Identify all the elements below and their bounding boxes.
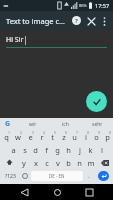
button[interactable]: DE - EN [31,171,83,181]
staticText: n [77,158,82,168]
button[interactable]: Emoji [19,171,31,181]
button[interactable]: ?123 [1,171,19,181]
button[interactable]: j [74,143,85,156]
button[interactable]: n [74,156,85,169]
button[interactable]: Enter [98,171,109,181]
staticText: e [28,132,33,142]
staticText: c [45,158,49,168]
staticText: 17:57 [95,2,110,9]
button[interactable]: ich [49,118,81,130]
button[interactable]: l [96,143,107,156]
button[interactable]: Close [84,14,98,28]
button[interactable]: Recent apps [81,184,97,200]
button[interactable]: z [58,130,69,143]
staticText: d [33,145,38,155]
staticText: 6 [65,130,68,135]
staticText: t [51,132,54,142]
staticText: z [62,132,66,142]
button[interactable]: a [7,143,19,156]
staticText: b [66,158,71,168]
staticText: 86% [79,3,87,8]
staticText: 1 [8,130,11,135]
staticText: o [94,132,99,142]
staticText: f [45,145,48,155]
staticText: sehr [92,121,103,128]
button[interactable]: Back [16,184,32,200]
button[interactable]: o [91,130,102,143]
button[interactable]: Hi Sir [6,35,107,48]
button[interactable]: w [12,130,24,143]
button[interactable]: wir [16,118,49,130]
staticText: u [72,132,77,142]
button[interactable]: c [41,156,52,169]
button[interactable]: Help [69,13,84,28]
staticText: 9 [98,130,101,135]
button[interactable]: f [41,143,52,156]
button[interactable]: p [102,130,113,143]
staticText: ?123 [5,173,16,180]
button[interactable]: . [83,171,95,181]
staticText: a [11,145,16,155]
button[interactable]: h [63,143,74,156]
button[interactable]: sehr [81,118,113,130]
staticText: j [79,145,81,155]
button[interactable]: e [24,130,36,143]
button[interactable]: b [63,156,74,169]
button[interactable]: r [36,130,47,143]
button[interactable]: v [52,156,63,169]
staticText: ? [75,17,78,25]
staticText: 5 [54,130,57,135]
staticText: . [88,172,90,180]
staticText: G [5,119,11,129]
staticText: p [105,132,110,142]
button[interactable]: Home [49,184,65,200]
button[interactable]: m [85,156,96,169]
button[interactable]: Backspace [96,156,113,169]
button[interactable]: Shift [0,156,18,169]
staticText: DE - EN [49,173,65,179]
staticText: 4 [43,130,46,135]
staticText: 8 [87,130,90,135]
button[interactable]: y [18,156,30,169]
button[interactable]: Google [0,118,16,130]
button[interactable]: q [0,130,12,143]
button[interactable]: d [30,143,41,156]
staticText: y [22,158,26,168]
staticText: 2 [20,130,23,135]
button[interactable]: x [30,156,41,169]
staticText: w [15,132,21,142]
staticText: h [66,145,71,155]
staticText: s [23,145,27,155]
staticText: Hi Sir [6,35,24,45]
staticText: 7 [76,130,79,135]
button[interactable]: g [52,143,63,156]
staticText: 0 [109,130,112,135]
button[interactable]: u [69,130,80,143]
staticText: q [4,132,9,142]
button[interactable]: k [85,143,96,156]
staticText: v [56,158,60,168]
button[interactable]: t [47,130,58,143]
button[interactable]: s [19,143,30,156]
staticText: r [40,132,44,142]
button[interactable]: More options [98,15,110,27]
staticText: Text to image conver... [6,16,69,26]
staticText: 3 [32,130,35,135]
staticText: wir [29,121,37,128]
staticText: l [101,145,103,155]
staticText: ich [62,121,69,128]
staticText: i [85,132,87,142]
staticText: g [55,145,60,155]
staticText: k [88,145,93,155]
button[interactable]: i [80,130,91,143]
button[interactable]: Done [86,91,107,112]
staticText: x [34,158,38,168]
staticText: m [87,158,95,168]
